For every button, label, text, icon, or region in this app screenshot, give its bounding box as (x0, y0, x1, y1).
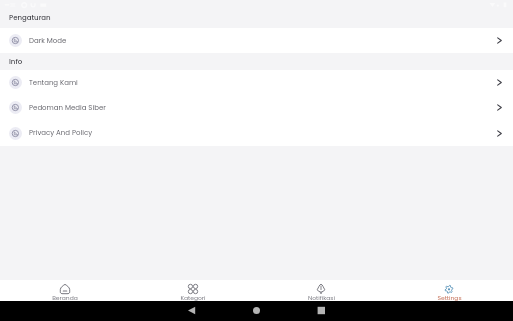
staticText: Kategori (180, 294, 206, 301)
staticText: Dark Mode (29, 36, 67, 46)
staticText: Pedoman Media Siber (29, 103, 106, 113)
button[interactable]: Privacy And Policy (0, 120, 513, 146)
button[interactable]: Categories (129, 280, 257, 301)
button[interactable]: Notifications (257, 280, 385, 301)
button[interactable]: Tentang Kami (0, 70, 513, 95)
staticText: Notifikasi (308, 294, 335, 301)
staticText: Info (9, 57, 23, 67)
staticText: Privacy And Policy (29, 128, 93, 138)
staticText: Settings (437, 294, 462, 301)
button[interactable]: Home (0, 280, 129, 301)
staticText: Beranda (52, 294, 78, 301)
staticText: Pengaturan (9, 13, 51, 23)
button[interactable]: Dark Mode (0, 28, 513, 53)
button[interactable]: Pedoman Media Siber (0, 95, 513, 120)
staticText: Tentang Kami (29, 78, 78, 88)
button[interactable]: Settings (385, 280, 513, 301)
